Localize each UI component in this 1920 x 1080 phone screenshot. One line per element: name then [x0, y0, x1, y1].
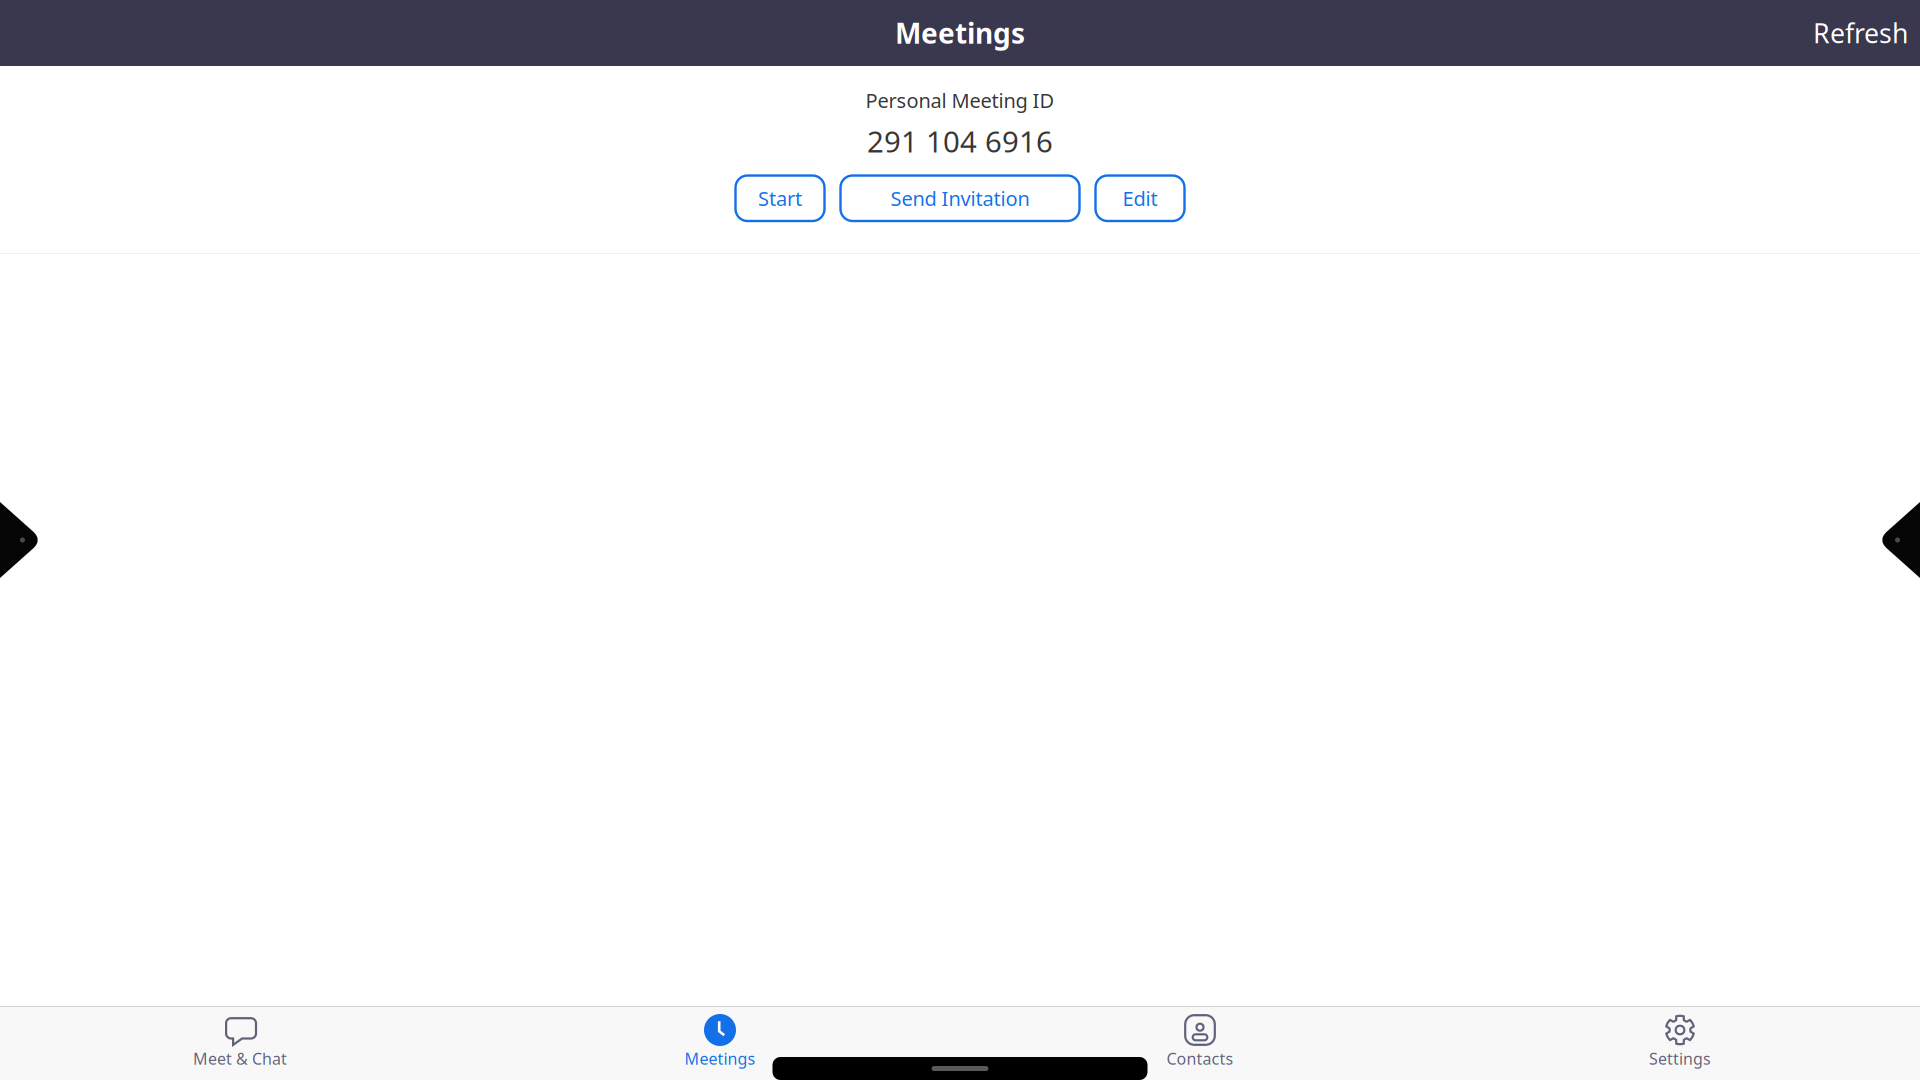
- button[interactable]: Meetings: [480, 1007, 960, 1080]
- button[interactable]: Contacts: [960, 1007, 1440, 1080]
- button[interactable]: Send Invitation: [840, 175, 1079, 221]
- staticText: Refresh: [1813, 15, 1908, 51]
- staticText: Meetings: [895, 14, 1025, 52]
- button[interactable]: Settings: [1440, 1007, 1920, 1080]
- staticText: Edit: [1122, 185, 1157, 212]
- staticText: Personal Meeting ID: [865, 87, 1054, 114]
- staticText: Settings: [1649, 1048, 1711, 1069]
- button[interactable]: Refresh: [1801, 0, 1920, 66]
- staticText: Meetings: [684, 1048, 755, 1069]
- button[interactable]: Meet & Chat: [0, 1007, 480, 1080]
- staticText: 291 104 6916: [867, 122, 1053, 161]
- button[interactable]: Start: [735, 175, 824, 221]
- button[interactable]: Edit: [1095, 175, 1184, 221]
- staticText: Send Invitation: [890, 185, 1029, 212]
- staticText: Start: [758, 185, 802, 212]
- staticText: Meet & Chat: [193, 1048, 287, 1069]
- staticText: Contacts: [1166, 1048, 1233, 1069]
